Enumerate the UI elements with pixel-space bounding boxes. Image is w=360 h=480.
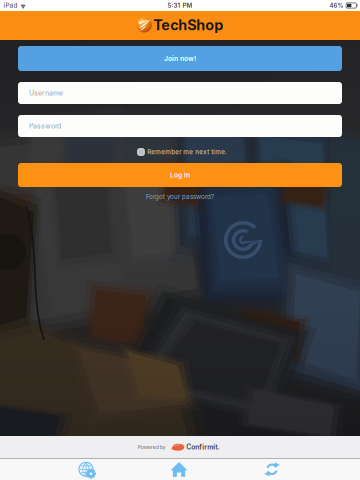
staticText: 46% (329, 2, 343, 9)
button[interactable]: Log In (18, 163, 342, 187)
button[interactable]: Remember me next time. (135, 146, 225, 158)
button[interactable]: Forgot your password? (142, 187, 218, 201)
button[interactable]: Settings (48, 459, 124, 480)
staticText: TechShop (153, 16, 223, 34)
button[interactable]: Home (141, 459, 217, 480)
button[interactable]: Join now! (18, 46, 342, 71)
button[interactable]: Refresh (234, 459, 310, 480)
staticText: Confirmit. (186, 443, 219, 451)
staticText: Forgot your password? (146, 193, 214, 201)
staticText: iPad (3, 2, 17, 9)
staticText: Username (29, 89, 63, 97)
staticText: Password (29, 122, 61, 130)
staticText: Powered by (138, 444, 166, 450)
staticText: 5:31 PM (167, 2, 192, 9)
staticText: Log In (170, 171, 190, 179)
staticText: Remember me next time. (147, 148, 227, 156)
staticText: Join now! (164, 54, 196, 63)
